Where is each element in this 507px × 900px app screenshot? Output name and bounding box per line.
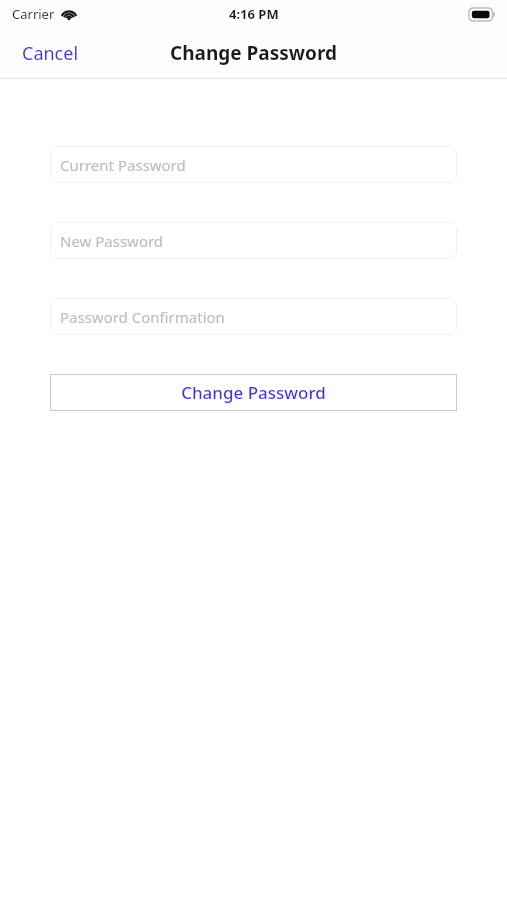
other: Battery <box>469 8 495 21</box>
staticText: Change Password <box>181 381 326 404</box>
button[interactable]: New Password <box>50 222 457 259</box>
staticText: New Password <box>60 231 164 251</box>
staticText: Cancel <box>22 41 79 66</box>
staticText: Password Confirmation <box>60 307 225 327</box>
button[interactable]: Cancel <box>0 31 101 76</box>
staticText: 4:16 PM <box>229 5 279 23</box>
button[interactable]: Password Confirmation <box>50 298 457 335</box>
staticText: Current Password <box>60 155 186 175</box>
staticText: Change Password <box>170 40 338 66</box>
other: Wi-Fi <box>61 8 77 20</box>
staticText: Carrier <box>12 5 55 23</box>
button[interactable]: Current Password <box>50 146 457 183</box>
button[interactable]: Change Password <box>50 374 457 411</box>
